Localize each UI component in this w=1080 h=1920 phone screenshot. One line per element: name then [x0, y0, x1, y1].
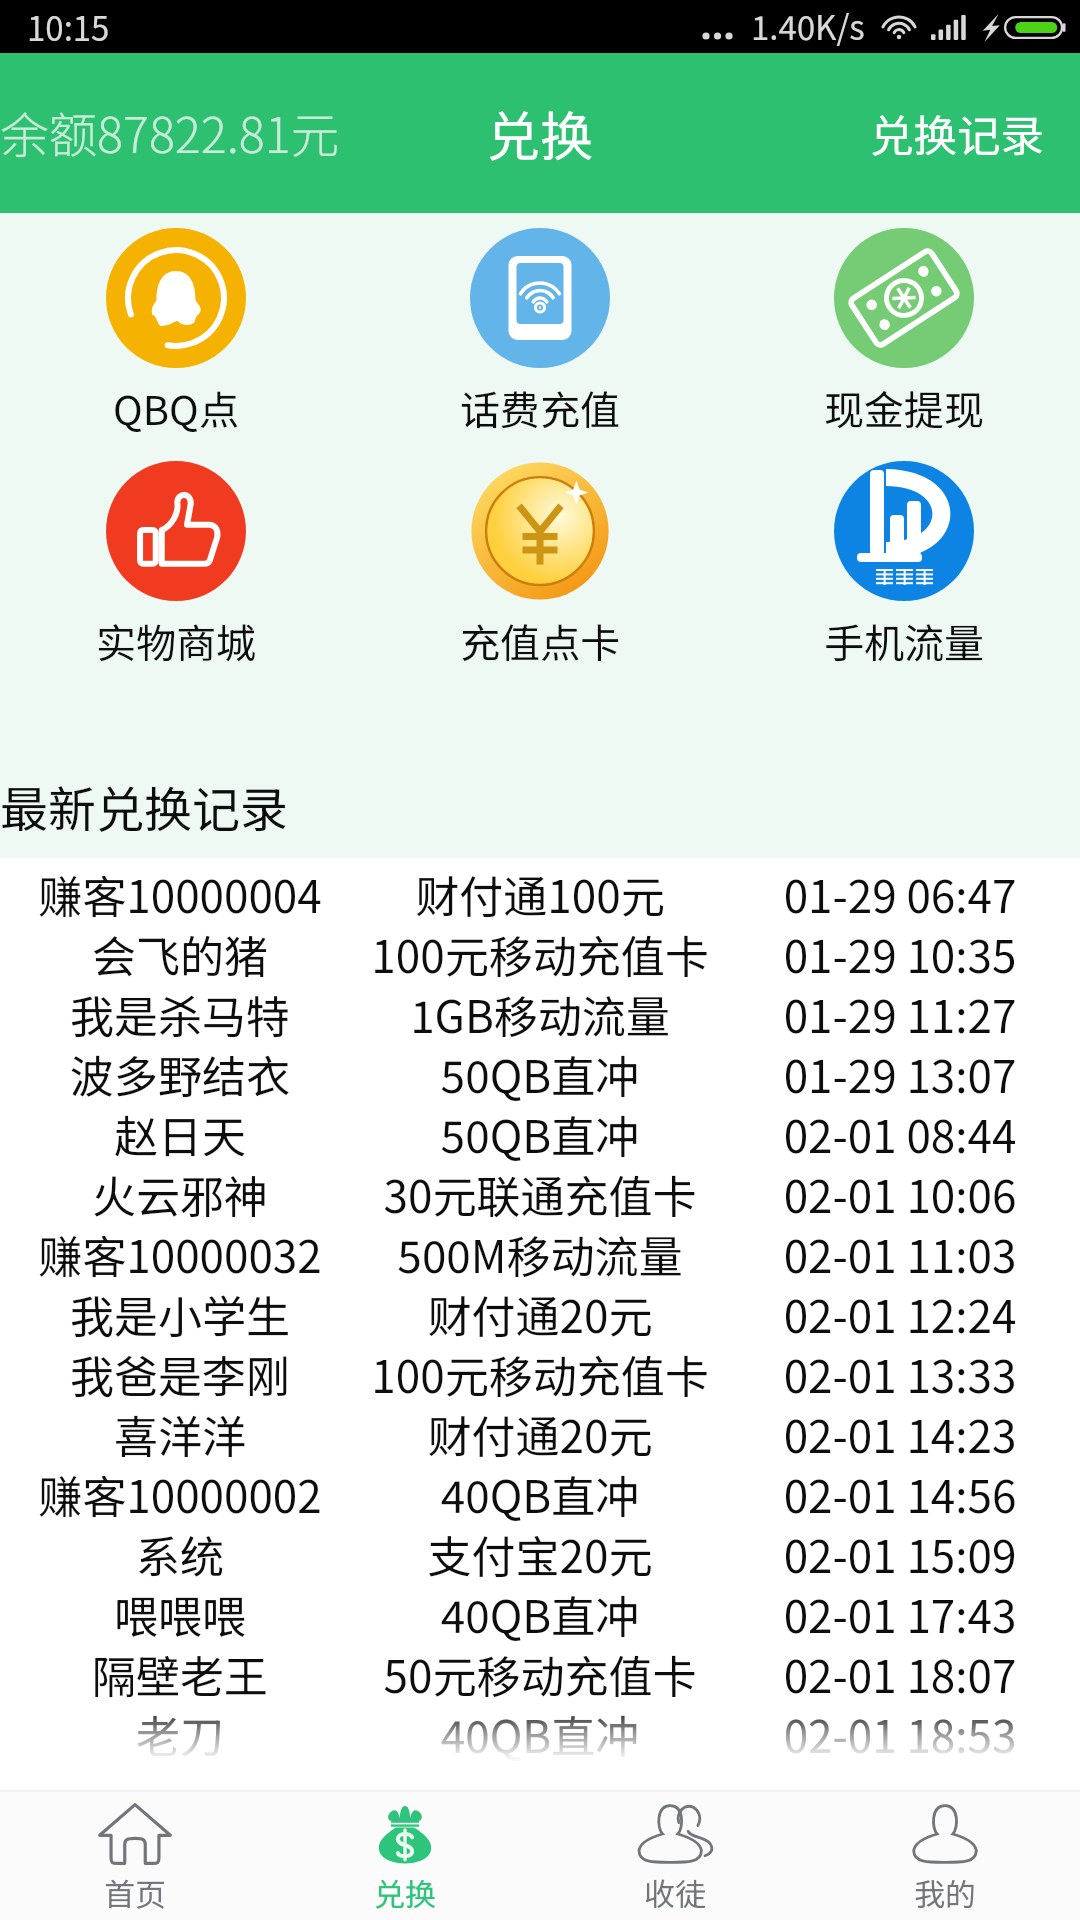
button[interactable]: 赚客10000032 [0, 1222, 1080, 1282]
staticText: 01-29 13:07 [720, 1042, 1080, 1102]
staticText: 赚客10000032 [0, 1222, 360, 1282]
button[interactable]: 兑换 [270, 1792, 540, 1920]
button[interactable]: 实物商城 [38, 461, 314, 670]
staticText: 财付通20元 [360, 1282, 720, 1342]
button[interactable]: 老刀 [0, 1702, 1080, 1762]
button[interactable]: 赚客10000004 [0, 862, 1080, 922]
staticText: 500M移动流量 [360, 1222, 720, 1282]
staticText: 兑换 [487, 95, 593, 172]
button[interactable]: 隔壁老王 [0, 1642, 1080, 1702]
staticText: 40QB直冲 [360, 1582, 720, 1642]
staticText: 02-01 12:24 [720, 1282, 1080, 1342]
button[interactable]: 喜洋洋 [0, 1402, 1080, 1462]
staticText: 50QB直冲 [360, 1042, 720, 1102]
staticText: 赚客10000004 [0, 862, 360, 922]
staticText: 01-29 10:35 [720, 922, 1080, 982]
staticText: 收徒 [644, 1870, 706, 1915]
button[interactable]: 我是杀马特 [0, 982, 1080, 1042]
staticText: 手机流量 [824, 612, 984, 670]
staticText: 隔壁老王 [0, 1642, 360, 1702]
button[interactable]: 我是小学生 [0, 1282, 1080, 1342]
button[interactable]: 充值点卡 [402, 461, 678, 670]
staticText: 实物商城 [96, 612, 256, 670]
staticText: 话费充值 [460, 379, 620, 437]
staticText: 02-01 18:07 [720, 1642, 1080, 1702]
staticText: 火云邪神 [0, 1162, 360, 1222]
staticText: 波多野结衣 [0, 1042, 360, 1102]
button[interactable]: 赵日天 [0, 1102, 1080, 1162]
staticText: 50QB直冲 [360, 1102, 720, 1162]
staticText: 喂喂喂 [0, 1582, 360, 1642]
staticText: 现金提现 [824, 379, 984, 437]
button[interactable]: 手机流量 [766, 461, 1042, 670]
staticText: 30元联通充值卡 [360, 1162, 720, 1222]
button[interactable]: 话费充值 [402, 228, 678, 437]
staticText: 首页 [104, 1870, 166, 1915]
staticText: 喜洋洋 [0, 1402, 360, 1462]
button[interactable]: 首页 [0, 1792, 270, 1920]
staticText: 我是小学生 [0, 1282, 360, 1342]
staticText: 1GB移动流量 [360, 982, 720, 1042]
staticText: 02-01 15:09 [720, 1522, 1080, 1582]
staticText: 会飞的猪 [0, 922, 360, 982]
staticText: 02-01 14:56 [720, 1462, 1080, 1522]
staticText: 充值点卡 [460, 612, 620, 670]
staticText: 02-01 17:43 [720, 1582, 1080, 1642]
staticText: 10:15 [27, 3, 110, 51]
staticText: 01-29 06:47 [720, 862, 1080, 922]
staticText: 02-01 18:53 [720, 1702, 1080, 1762]
staticText: 02-01 13:33 [720, 1342, 1080, 1402]
button[interactable]: QBQ点 [38, 228, 314, 437]
button[interactable]: 收徒 [540, 1792, 810, 1920]
button[interactable]: 波多野结衣 [0, 1042, 1080, 1102]
staticText: 02-01 08:44 [720, 1102, 1080, 1162]
staticText: 余额87822.81元 [0, 97, 340, 167]
staticText: 40QB直冲 [360, 1702, 720, 1762]
staticText: 100元移动充值卡 [360, 922, 720, 982]
staticText: 财付通20元 [360, 1402, 720, 1462]
staticText: 兑换 [374, 1870, 436, 1915]
staticText: 40QB直冲 [360, 1462, 720, 1522]
staticText: 财付通100元 [360, 862, 720, 922]
button[interactable]: 火云邪神 [0, 1162, 1080, 1222]
staticText: 我的 [914, 1870, 976, 1915]
button[interactable]: 赚客10000002 [0, 1462, 1080, 1522]
staticText: 赚客10000002 [0, 1462, 360, 1522]
staticText: 支付宝20元 [360, 1522, 720, 1582]
staticText: 100元移动充值卡 [360, 1342, 720, 1402]
staticText: 02-01 14:23 [720, 1402, 1080, 1462]
staticText: 最新兑换记录 [0, 771, 289, 841]
button[interactable]: 喂喂喂 [0, 1582, 1080, 1642]
button[interactable]: 系统 [0, 1522, 1080, 1582]
staticText: 50元移动充值卡 [360, 1642, 720, 1702]
button[interactable]: 我的 [810, 1792, 1080, 1920]
button[interactable]: 现金提现 [766, 228, 1042, 437]
staticText: 老刀 [0, 1702, 360, 1762]
staticText: QBQ点 [113, 379, 239, 437]
staticText: 1.40K/s [751, 2, 865, 50]
staticText: 02-01 11:03 [720, 1222, 1080, 1282]
staticText: 01-29 11:27 [720, 982, 1080, 1042]
staticText: 我爸是李刚 [0, 1342, 360, 1402]
staticText: 系统 [0, 1522, 360, 1582]
staticText: 02-01 10:06 [720, 1162, 1080, 1222]
button[interactable]: 会飞的猪 [0, 922, 1080, 982]
staticText: 赵日天 [0, 1102, 360, 1162]
button[interactable]: 我爸是李刚 [0, 1342, 1080, 1402]
staticText: 我是杀马特 [0, 982, 360, 1042]
button[interactable]: 兑换记录 [870, 102, 1044, 165]
